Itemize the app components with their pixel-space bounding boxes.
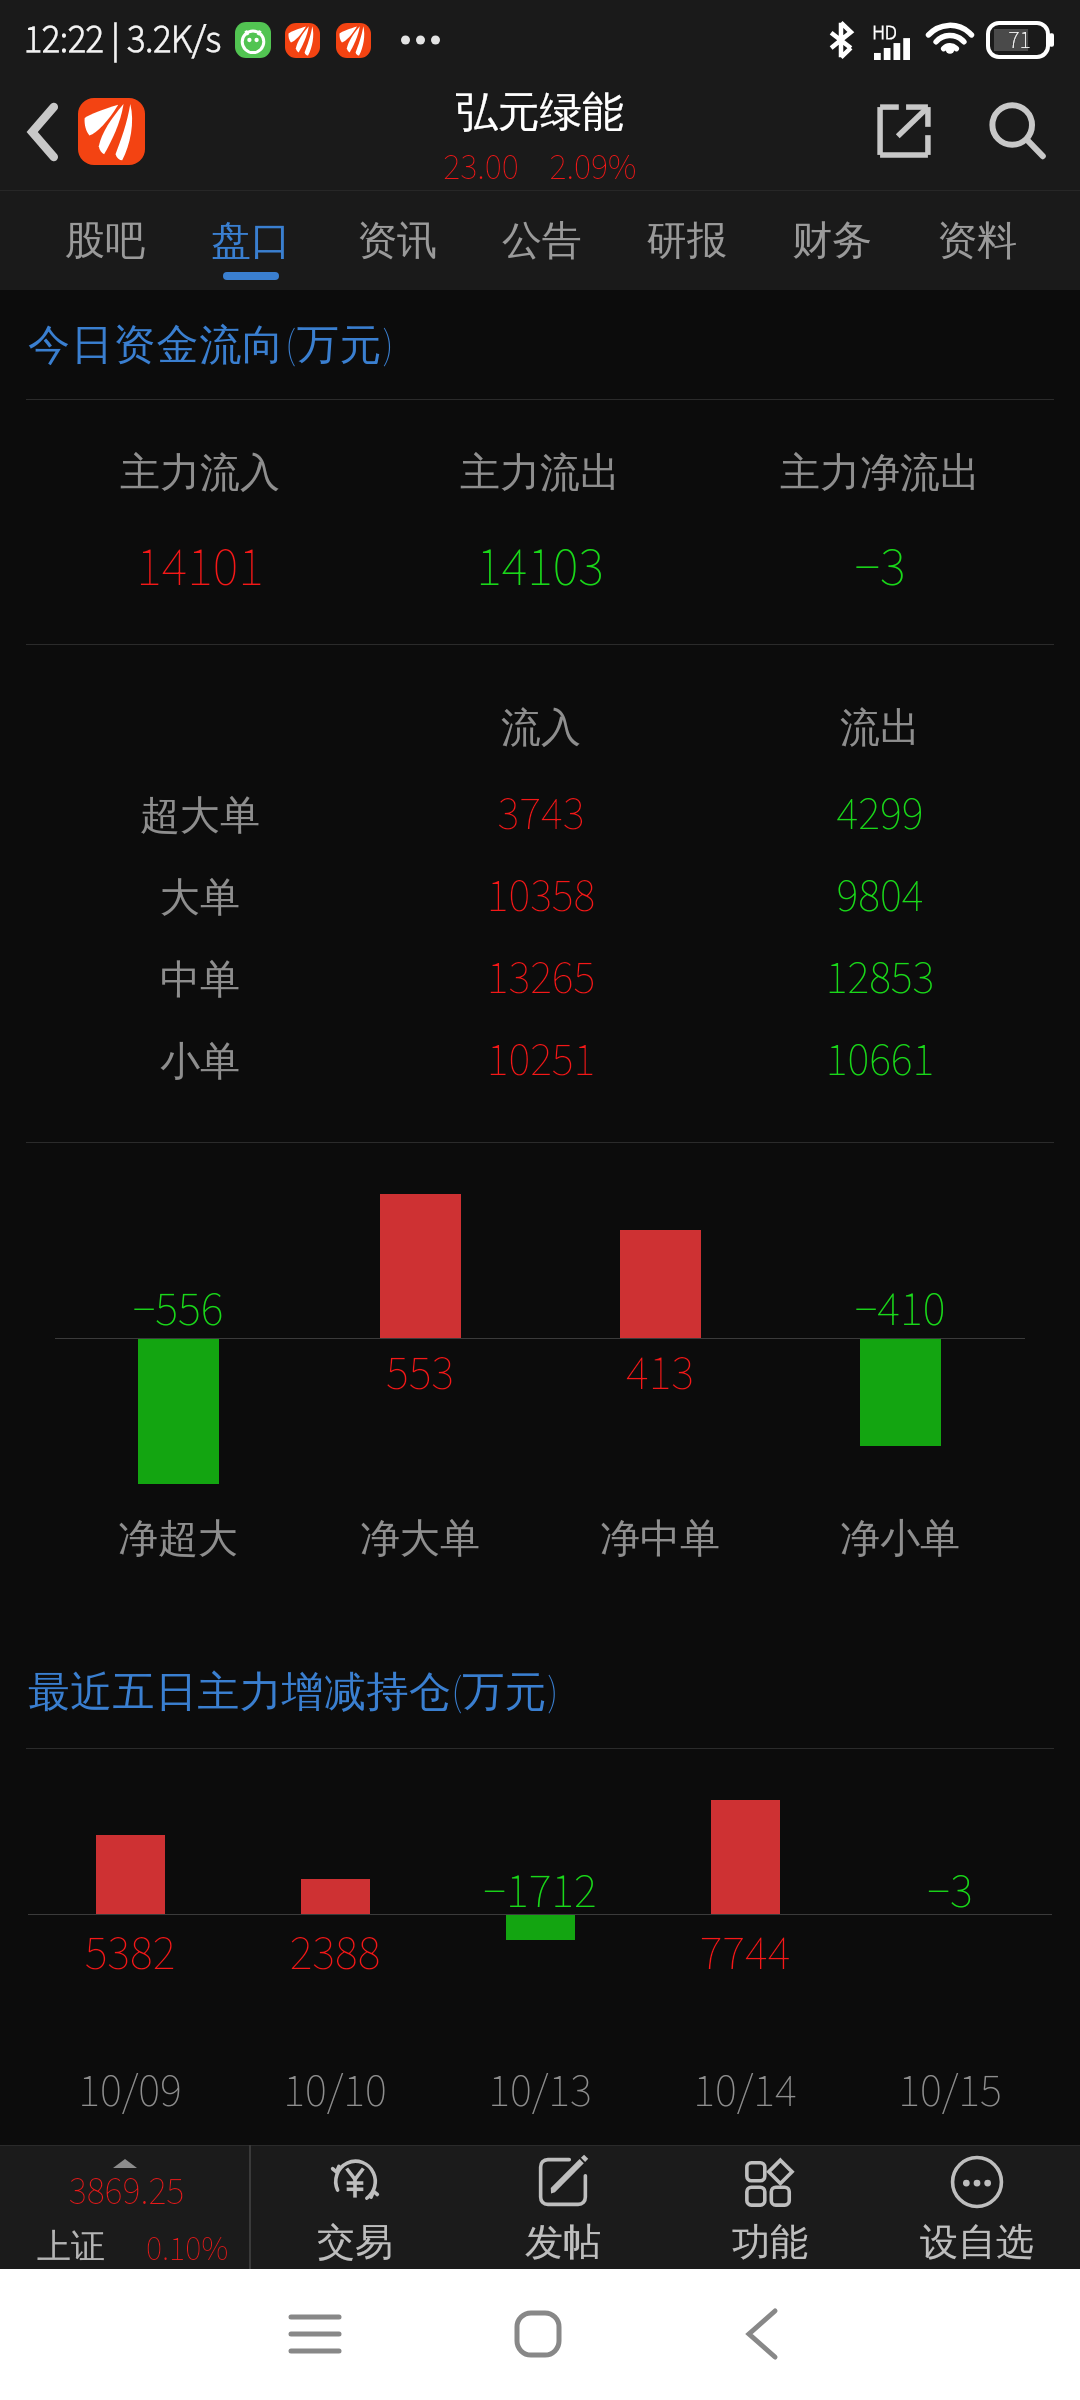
staticText: −556 <box>78 1276 278 1344</box>
button[interactable]: 公告 <box>469 191 614 290</box>
staticText: 10251 <box>391 1028 691 1094</box>
staticText: 553 <box>320 1340 520 1408</box>
staticText: 2.09% <box>549 142 637 193</box>
staticText: 12853 <box>730 946 1030 1012</box>
staticText: 10/13 <box>440 2059 640 2125</box>
staticText: 12:22 | 3.2K/s <box>24 13 221 67</box>
staticText: −3 <box>850 1858 1050 1926</box>
staticText: 小单 <box>50 1036 350 1086</box>
staticText: 功能 <box>732 2218 808 2266</box>
staticText: 公告 <box>502 215 582 265</box>
button[interactable]: 功能 <box>666 2145 873 2269</box>
button[interactable]: 设自选 <box>873 2145 1080 2269</box>
staticText: 14103 <box>390 530 690 607</box>
button[interactable]: App home <box>78 98 145 165</box>
staticText: 10/10 <box>235 2059 435 2125</box>
staticText: −3 <box>730 530 1030 607</box>
staticText: 净大单 <box>320 1513 520 1563</box>
staticText: 主力流入 <box>50 447 350 497</box>
staticText: 股吧 <box>65 215 145 265</box>
staticText: 3869.25 <box>2 2165 251 2219</box>
staticText: 净小单 <box>800 1513 1000 1563</box>
button[interactable]: 财务 <box>759 191 904 290</box>
staticText: 23.00 <box>443 142 519 193</box>
button[interactable]: Search <box>958 75 1076 186</box>
staticText: 5382 <box>30 1920 230 1988</box>
button[interactable]: 资讯 <box>324 191 469 290</box>
staticText: 主力流出 <box>390 447 690 497</box>
staticText: 净中单 <box>560 1513 760 1563</box>
staticText: 主力净流出 <box>730 447 1030 497</box>
staticText: 14101 <box>50 530 350 607</box>
staticText: 交易 <box>317 2218 393 2266</box>
staticText: 3743 <box>391 782 691 848</box>
staticText: 流入 <box>391 702 691 752</box>
staticText: 413 <box>560 1340 760 1408</box>
staticText: 中单 <box>50 954 350 1004</box>
staticText: 13265 <box>391 946 691 1012</box>
staticText: 4299 <box>730 782 1030 848</box>
staticText: 7744 <box>645 1920 845 1988</box>
staticText: 净超大 <box>78 1513 278 1563</box>
staticText: 9804 <box>730 864 1030 930</box>
button[interactable]: 3869.25 <box>0 2145 249 2269</box>
staticText: 10358 <box>391 864 691 930</box>
staticText: 10/15 <box>850 2059 1050 2125</box>
staticText: 资讯 <box>357 215 437 265</box>
staticText: −410 <box>800 1276 1000 1344</box>
button[interactable]: Share <box>850 75 958 186</box>
staticText: 设自选 <box>920 2218 1034 2266</box>
button[interactable]: Back <box>0 80 78 191</box>
button[interactable]: 股吧 <box>32 191 178 290</box>
button[interactable]: 交易 <box>251 2145 459 2269</box>
staticText: 流出 <box>730 702 1030 752</box>
staticText: 发帖 <box>525 2218 601 2266</box>
button[interactable]: 盘口 <box>178 191 324 290</box>
staticText: 超大单 <box>50 790 350 840</box>
staticText: HD <box>872 19 897 47</box>
button[interactable]: Home <box>493 2289 583 2379</box>
staticText: 最近五日主力增减持仓(万元) <box>28 1663 559 1723</box>
staticText: 0.10% <box>146 2225 229 2273</box>
staticText: 资料 <box>937 215 1017 265</box>
staticText: 10661 <box>730 1028 1030 1094</box>
staticText: 今日资金流向(万元) <box>28 316 395 376</box>
staticText: −1712 <box>440 1858 640 1926</box>
button[interactable]: Back <box>717 2289 807 2379</box>
staticText: 71 <box>1008 23 1031 57</box>
button[interactable]: 研报 <box>614 191 759 290</box>
staticText: 大单 <box>50 872 350 922</box>
staticText: 盘口 <box>211 215 291 265</box>
staticText: 上证 <box>37 2225 105 2268</box>
staticText: 财务 <box>792 215 872 265</box>
button[interactable]: 发帖 <box>459 2145 666 2269</box>
button[interactable]: Recents <box>270 2289 360 2379</box>
staticText: 弘元绿能 <box>456 86 624 139</box>
staticText: 10/09 <box>30 2059 230 2125</box>
staticText: 2388 <box>235 1920 435 1988</box>
button[interactable]: 资料 <box>904 191 1049 290</box>
staticText: 研报 <box>647 215 727 265</box>
staticText: 10/14 <box>645 2059 845 2125</box>
